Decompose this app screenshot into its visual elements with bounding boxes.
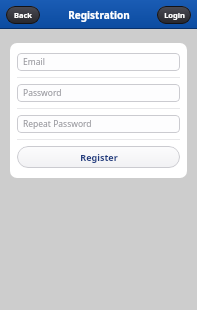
button[interactable]: Password <box>17 84 180 102</box>
staticText: Email <box>23 56 45 68</box>
button[interactable]: Register <box>17 146 180 168</box>
staticText: Registration <box>68 8 130 22</box>
button[interactable]: Login <box>157 6 191 24</box>
staticText: Login <box>164 10 185 20</box>
button[interactable]: Email <box>17 53 180 71</box>
button[interactable]: Repeat Password <box>17 115 180 133</box>
button[interactable]: Back <box>6 6 40 24</box>
staticText: Register <box>80 151 118 163</box>
staticText: Repeat Password <box>23 118 92 130</box>
staticText: Back <box>14 10 32 20</box>
staticText: Password <box>23 87 62 99</box>
